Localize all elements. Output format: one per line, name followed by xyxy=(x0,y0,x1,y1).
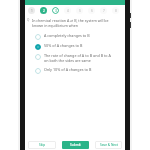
button[interactable]: 7 xyxy=(100,7,107,14)
staticText: The rate of change of A to B and B to A … xyxy=(44,53,116,63)
staticText: In chemical reaction A ⇌ B, the system w… xyxy=(32,18,113,28)
staticText: Submit xyxy=(70,143,81,147)
button[interactable]: 2 xyxy=(40,7,47,14)
staticText: 4 xyxy=(67,9,69,13)
staticText: 2 xyxy=(43,9,45,13)
staticText: 6 xyxy=(91,9,93,13)
staticText: 5 xyxy=(79,9,81,13)
staticText: Q xyxy=(27,18,30,22)
staticText: 8 xyxy=(115,9,117,13)
button[interactable]: 3 xyxy=(52,7,59,14)
button[interactable]: 50% of A changes to B xyxy=(35,43,116,50)
button[interactable]: The rate of change of A to B and B to A … xyxy=(35,53,116,63)
button[interactable]: Save & Next xyxy=(95,141,122,149)
staticText: 1 xyxy=(31,9,33,13)
button[interactable]: 4 xyxy=(64,7,71,14)
staticText: A completely changes to B xyxy=(44,33,90,38)
button[interactable]: 6 xyxy=(88,7,95,14)
button[interactable]: Only 10% of A changes to B xyxy=(35,67,116,74)
staticText: Only 10% of A changes to B xyxy=(44,67,92,72)
button[interactable]: 5 xyxy=(76,7,83,14)
staticText: Skip xyxy=(39,143,46,147)
staticText: 3 xyxy=(55,9,57,13)
button[interactable]: 8 xyxy=(112,7,119,14)
staticText: Save & Next xyxy=(100,143,118,147)
staticText: 50% of A changes to B xyxy=(44,43,83,48)
button[interactable]: 1 xyxy=(28,7,35,14)
button[interactable]: Skip xyxy=(28,141,56,149)
staticText: 7 xyxy=(103,9,105,13)
button[interactable]: A completely changes to B xyxy=(35,33,116,40)
button[interactable]: Submit xyxy=(62,141,89,149)
